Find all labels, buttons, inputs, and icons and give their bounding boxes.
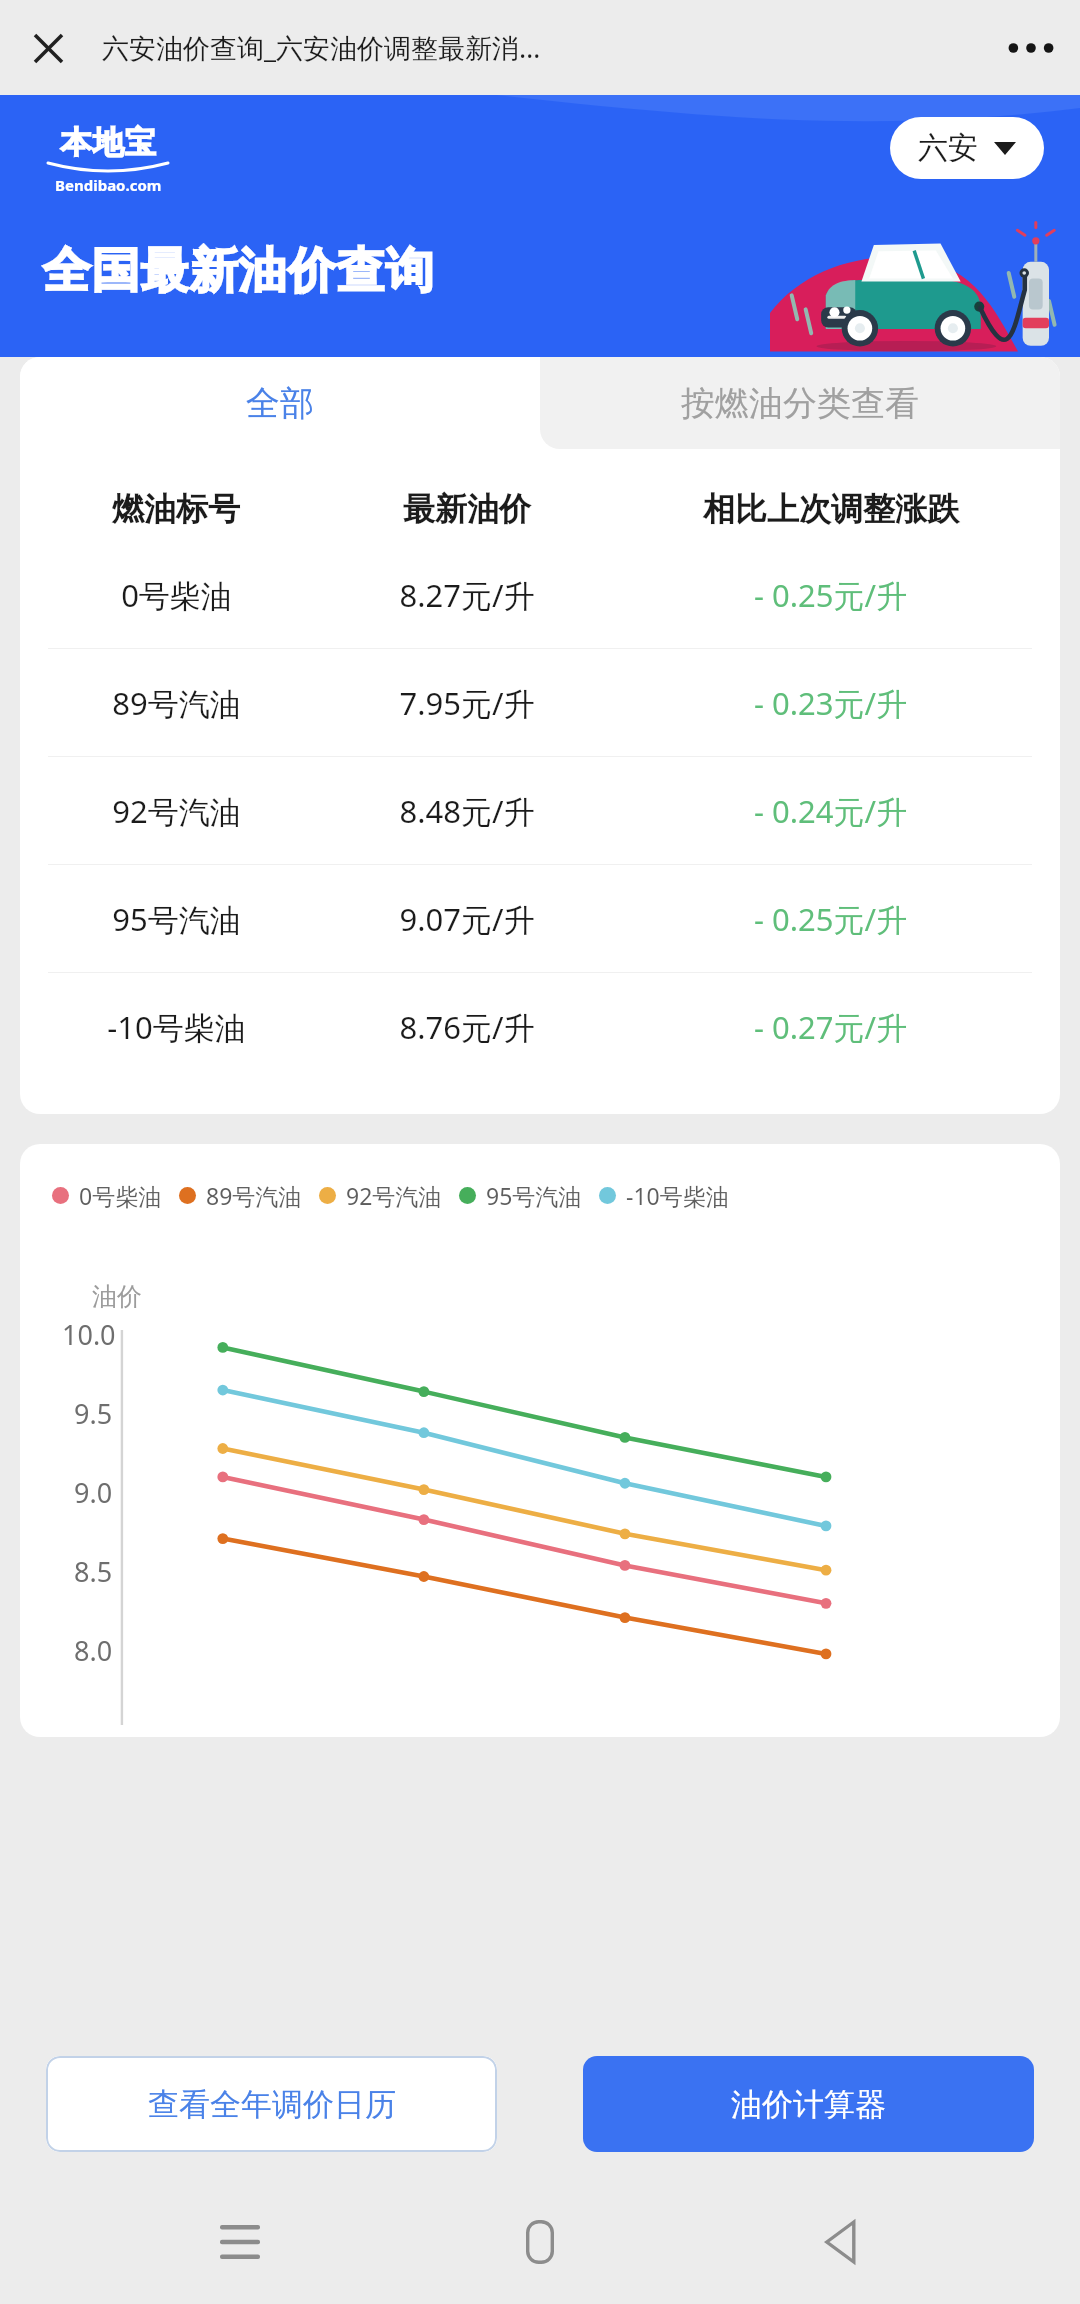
staticText: -: [754, 574, 764, 616]
button[interactable]: Home: [480, 2182, 600, 2302]
staticText: 92号汽油: [346, 1180, 442, 1211]
button[interactable]: Recent apps: [180, 2182, 300, 2302]
staticText: 0.27元/升: [772, 1006, 908, 1048]
staticText: 全部: [246, 382, 314, 425]
button[interactable]: 全部: [20, 357, 540, 449]
staticText: 92号汽油: [112, 790, 241, 832]
staticText: 油价计算器: [731, 2085, 886, 2124]
button[interactable]: 油价计算器: [583, 2056, 1034, 2152]
staticText: 89号汽油: [112, 682, 241, 724]
staticText: 95号汽油: [486, 1180, 582, 1211]
staticText: 95号汽油: [112, 898, 241, 940]
button[interactable]: 89号汽油: [20, 649, 1060, 756]
staticText: -10号柴油: [626, 1180, 729, 1211]
staticText: 9.0: [74, 1474, 113, 1511]
staticText: -: [754, 790, 764, 832]
staticText: 89号汽油: [206, 1180, 302, 1211]
staticText: 9.5: [74, 1395, 113, 1432]
button[interactable]: 0号柴油: [20, 541, 1060, 648]
staticText: 8.27元/升: [399, 574, 535, 616]
staticText: 0.23元/升: [772, 682, 908, 724]
staticText: 0号柴油: [121, 574, 232, 616]
staticText: 7.95元/升: [399, 682, 535, 724]
staticText: -: [754, 1006, 764, 1048]
staticText: 9.07元/升: [399, 898, 535, 940]
staticText: -: [754, 682, 764, 724]
staticText: 燃油标号: [112, 489, 240, 529]
staticText: -10号柴油: [107, 1006, 246, 1048]
button[interactable]: 查看全年调价日历: [46, 2056, 497, 2152]
staticText: 查看全年调价日历: [148, 2085, 396, 2124]
button[interactable]: 92号汽油: [20, 757, 1060, 864]
button[interactable]: Close: [16, 16, 80, 80]
staticText: 相比上次调整涨跌: [703, 489, 959, 529]
staticText: 8.0: [74, 1632, 113, 1669]
staticText: 0.25元/升: [772, 898, 908, 940]
button[interactable]: 按燃油分类查看: [540, 357, 1060, 449]
staticText: 0.24元/升: [772, 790, 908, 832]
staticText: -: [754, 898, 764, 940]
staticText: 最新油价: [403, 489, 531, 529]
staticText: 0号柴油: [79, 1180, 162, 1211]
staticText: 按燃油分类查看: [681, 382, 919, 425]
staticText: 全国最新油价查询: [42, 241, 434, 301]
staticText: 8.76元/升: [399, 1006, 535, 1048]
staticText: 8.48元/升: [399, 790, 535, 832]
staticText: 六安油价查询_六安油价调整最新消…: [102, 29, 541, 66]
staticText: Bendibao.com: [55, 175, 162, 195]
button[interactable]: More options: [998, 15, 1064, 81]
staticText: 0.25元/升: [772, 574, 908, 616]
button[interactable]: Back: [780, 2182, 900, 2302]
button[interactable]: 六安: [890, 117, 1044, 179]
staticText: 六安: [918, 129, 978, 167]
button[interactable]: 95号汽油: [20, 865, 1060, 972]
staticText: 本地宝: [60, 123, 156, 162]
staticText: 油价: [92, 1281, 142, 1312]
staticText: 10.0: [62, 1316, 116, 1353]
button[interactable]: -10号柴油: [20, 973, 1060, 1080]
staticText: 8.5: [74, 1553, 113, 1590]
